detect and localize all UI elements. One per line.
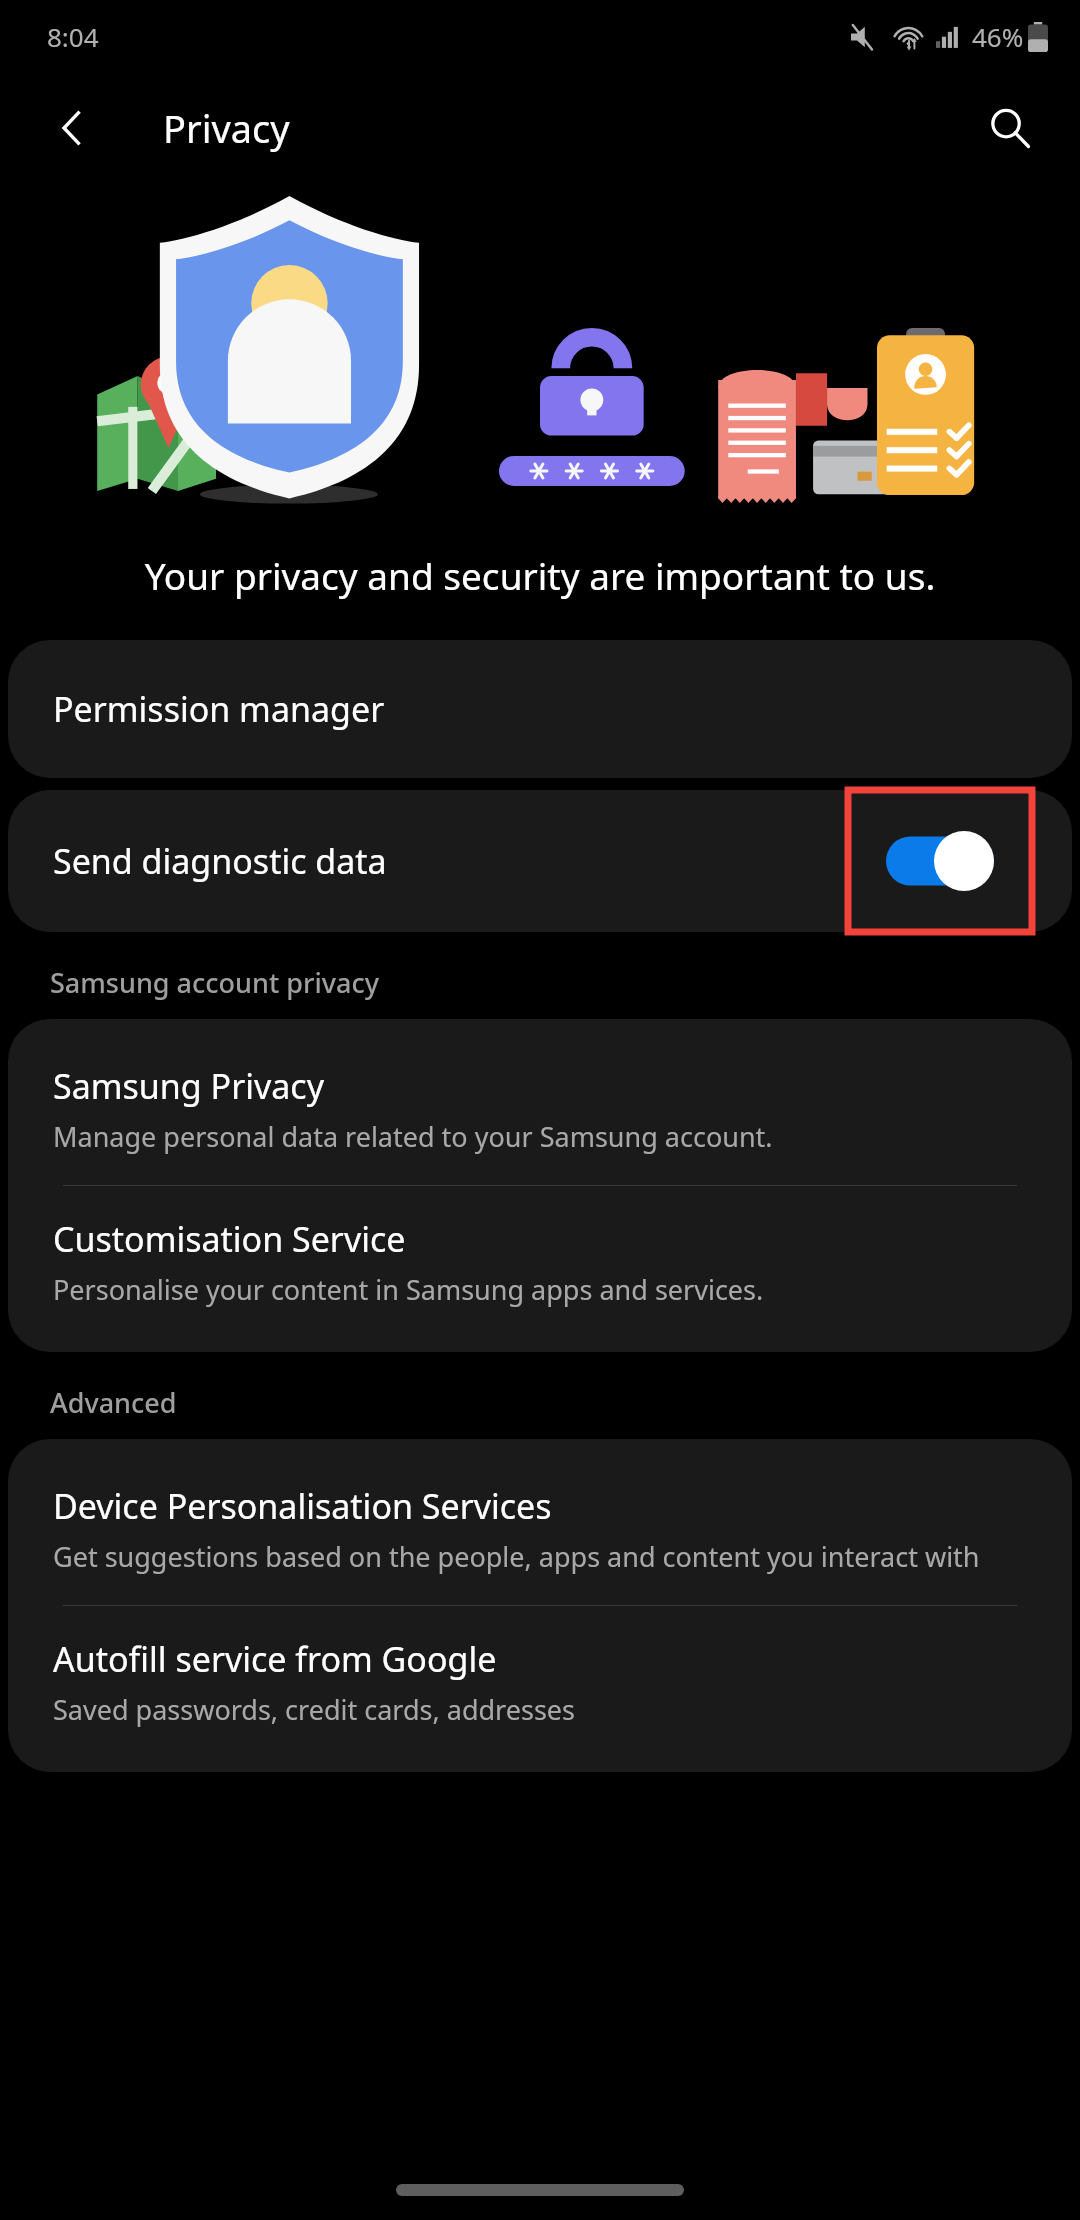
staticText: Send diagnostic data [53, 838, 387, 884]
button[interactable]: Autofill service from Google [8, 1606, 1072, 1758]
staticText: 46% [972, 19, 1024, 54]
button[interactable]: Permission manager [8, 640, 1072, 778]
button[interactable]: Customisation Service [8, 1186, 1072, 1338]
staticText: Saved passwords, credit cards, addresses [53, 1691, 575, 1728]
button[interactable]: Samsung Privacy [8, 1033, 1072, 1185]
staticText: Personalise your content in Samsung apps… [53, 1271, 764, 1308]
staticText: Get suggestions based on the people, app… [53, 1538, 980, 1575]
staticText: Your privacy and security are important … [92, 550, 988, 600]
button[interactable]: Search [978, 96, 1042, 160]
button[interactable]: Send diagnostic data toggle, on [886, 831, 994, 891]
button[interactable]: Send diagnostic data [8, 790, 1072, 932]
staticText: Samsung Privacy [53, 1063, 324, 1109]
staticText: Autofill service from Google [53, 1636, 497, 1682]
staticText: Customisation Service [53, 1216, 406, 1262]
staticText: Samsung account privacy [50, 964, 379, 1001]
staticText: Permission manager [53, 686, 385, 732]
staticText: Advanced [50, 1384, 177, 1421]
staticText: Privacy [163, 102, 290, 154]
button[interactable]: Device Personalisation Services [8, 1453, 1072, 1605]
staticText: Device Personalisation Services [53, 1483, 552, 1529]
staticText: 8:04 [47, 19, 99, 54]
staticText: Manage personal data related to your Sam… [53, 1118, 773, 1155]
button[interactable]: Back [44, 100, 100, 156]
